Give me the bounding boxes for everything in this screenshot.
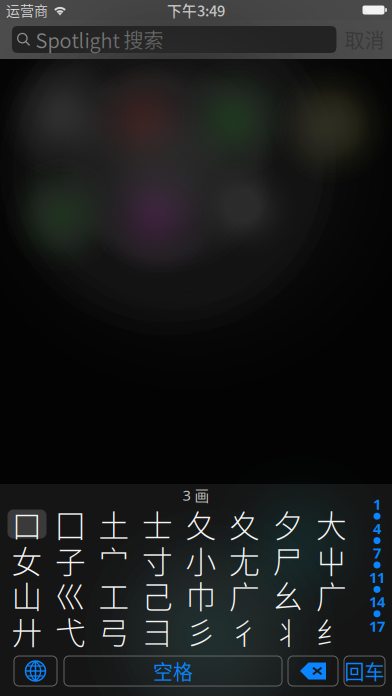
staticText: 彳	[229, 609, 260, 653]
staticText: 夕	[272, 502, 303, 546]
staticText: 宀	[98, 538, 129, 582]
button[interactable]: 子	[51, 545, 90, 574]
staticText: 彡	[185, 609, 216, 653]
button[interactable]: 己	[138, 580, 177, 609]
staticText: 画	[194, 484, 209, 506]
staticText: 子	[55, 538, 86, 582]
button[interactable]: Delete	[288, 656, 338, 686]
staticText: 11	[369, 567, 385, 587]
button[interactable]: 弓	[94, 616, 133, 645]
staticText: 工	[98, 573, 129, 617]
button[interactable]: 山	[7, 580, 46, 609]
button[interactable]: 巾	[181, 580, 220, 609]
button[interactable]: 取消	[340, 24, 388, 54]
staticText: 女	[11, 538, 42, 582]
button[interactable]: 士	[138, 509, 177, 538]
staticText: 纟	[316, 609, 347, 653]
button[interactable]: 屮	[312, 545, 351, 574]
staticText: 1	[373, 494, 381, 514]
button[interactable]: Switch keyboard	[14, 656, 57, 686]
button[interactable]: 彳	[225, 616, 264, 645]
staticText: 下午3:49	[167, 0, 225, 21]
staticText: 夂	[185, 502, 216, 546]
button[interactable]: 尸	[268, 545, 307, 574]
button[interactable]: 夂	[181, 509, 220, 538]
staticText: 空格	[153, 656, 193, 685]
button[interactable]: 大	[312, 509, 351, 538]
staticText: 尸	[272, 538, 303, 582]
staticText: 广	[229, 573, 260, 617]
button[interactable]: 彡	[181, 616, 220, 645]
button[interactable]: 回车	[344, 656, 385, 686]
staticText: 取消	[344, 25, 384, 54]
button[interactable]: 寸	[138, 545, 177, 574]
button[interactable]: 小	[181, 545, 220, 574]
staticText: 囗	[55, 502, 86, 546]
staticText: 7	[373, 543, 381, 563]
button[interactable]: 夊	[225, 509, 264, 538]
staticText: 3	[182, 485, 190, 505]
staticText: 运营商	[6, 0, 48, 20]
staticText: 尢	[229, 538, 260, 582]
staticText: 士	[142, 502, 173, 546]
staticText: 彐	[142, 609, 173, 653]
button[interactable]: 纟	[312, 616, 351, 645]
staticText: 回车	[344, 656, 384, 685]
staticText: 4	[373, 519, 381, 538]
button[interactable]: 弋	[51, 616, 90, 645]
button[interactable]: 幺	[268, 580, 307, 609]
staticText: 大	[316, 502, 347, 546]
button[interactable]: 尢	[225, 545, 264, 574]
staticText: 屮	[316, 538, 347, 582]
button[interactable]: 女	[7, 545, 46, 574]
staticText: 寸	[142, 538, 173, 582]
button[interactable]: 彐	[138, 616, 177, 645]
staticText: 丬	[272, 609, 303, 653]
button[interactable]: 土	[94, 509, 133, 538]
button[interactable]: 宀	[94, 545, 133, 574]
staticText: 土	[98, 502, 129, 546]
button[interactable]: 口	[7, 509, 46, 538]
staticText: 巾	[185, 573, 216, 617]
button[interactable]: 广	[225, 580, 264, 609]
button[interactable]: 空格	[64, 656, 282, 686]
button[interactable]: 夕	[268, 509, 307, 538]
staticText: 巛	[55, 573, 86, 617]
button[interactable]: 工	[94, 580, 133, 609]
button[interactable]: 丬	[268, 616, 307, 645]
button[interactable]: 囗	[51, 509, 90, 538]
staticText: 山	[11, 573, 42, 617]
staticText: 小	[185, 538, 216, 582]
staticText: 17	[369, 616, 385, 636]
staticText: 弋	[55, 609, 86, 653]
staticText: Spotlight 搜索	[35, 25, 163, 54]
staticText: 己	[142, 573, 173, 617]
staticText: 弓	[98, 609, 129, 653]
staticText: 14	[369, 592, 385, 611]
staticText: 广	[316, 573, 347, 617]
button[interactable]: 巛	[51, 580, 90, 609]
staticText: 廾	[11, 609, 42, 653]
button[interactable]: 广	[312, 580, 351, 609]
staticText: 幺	[272, 573, 303, 617]
staticText: 口	[11, 502, 42, 546]
staticText: 夊	[229, 502, 260, 546]
button[interactable]: 廾	[7, 616, 46, 645]
